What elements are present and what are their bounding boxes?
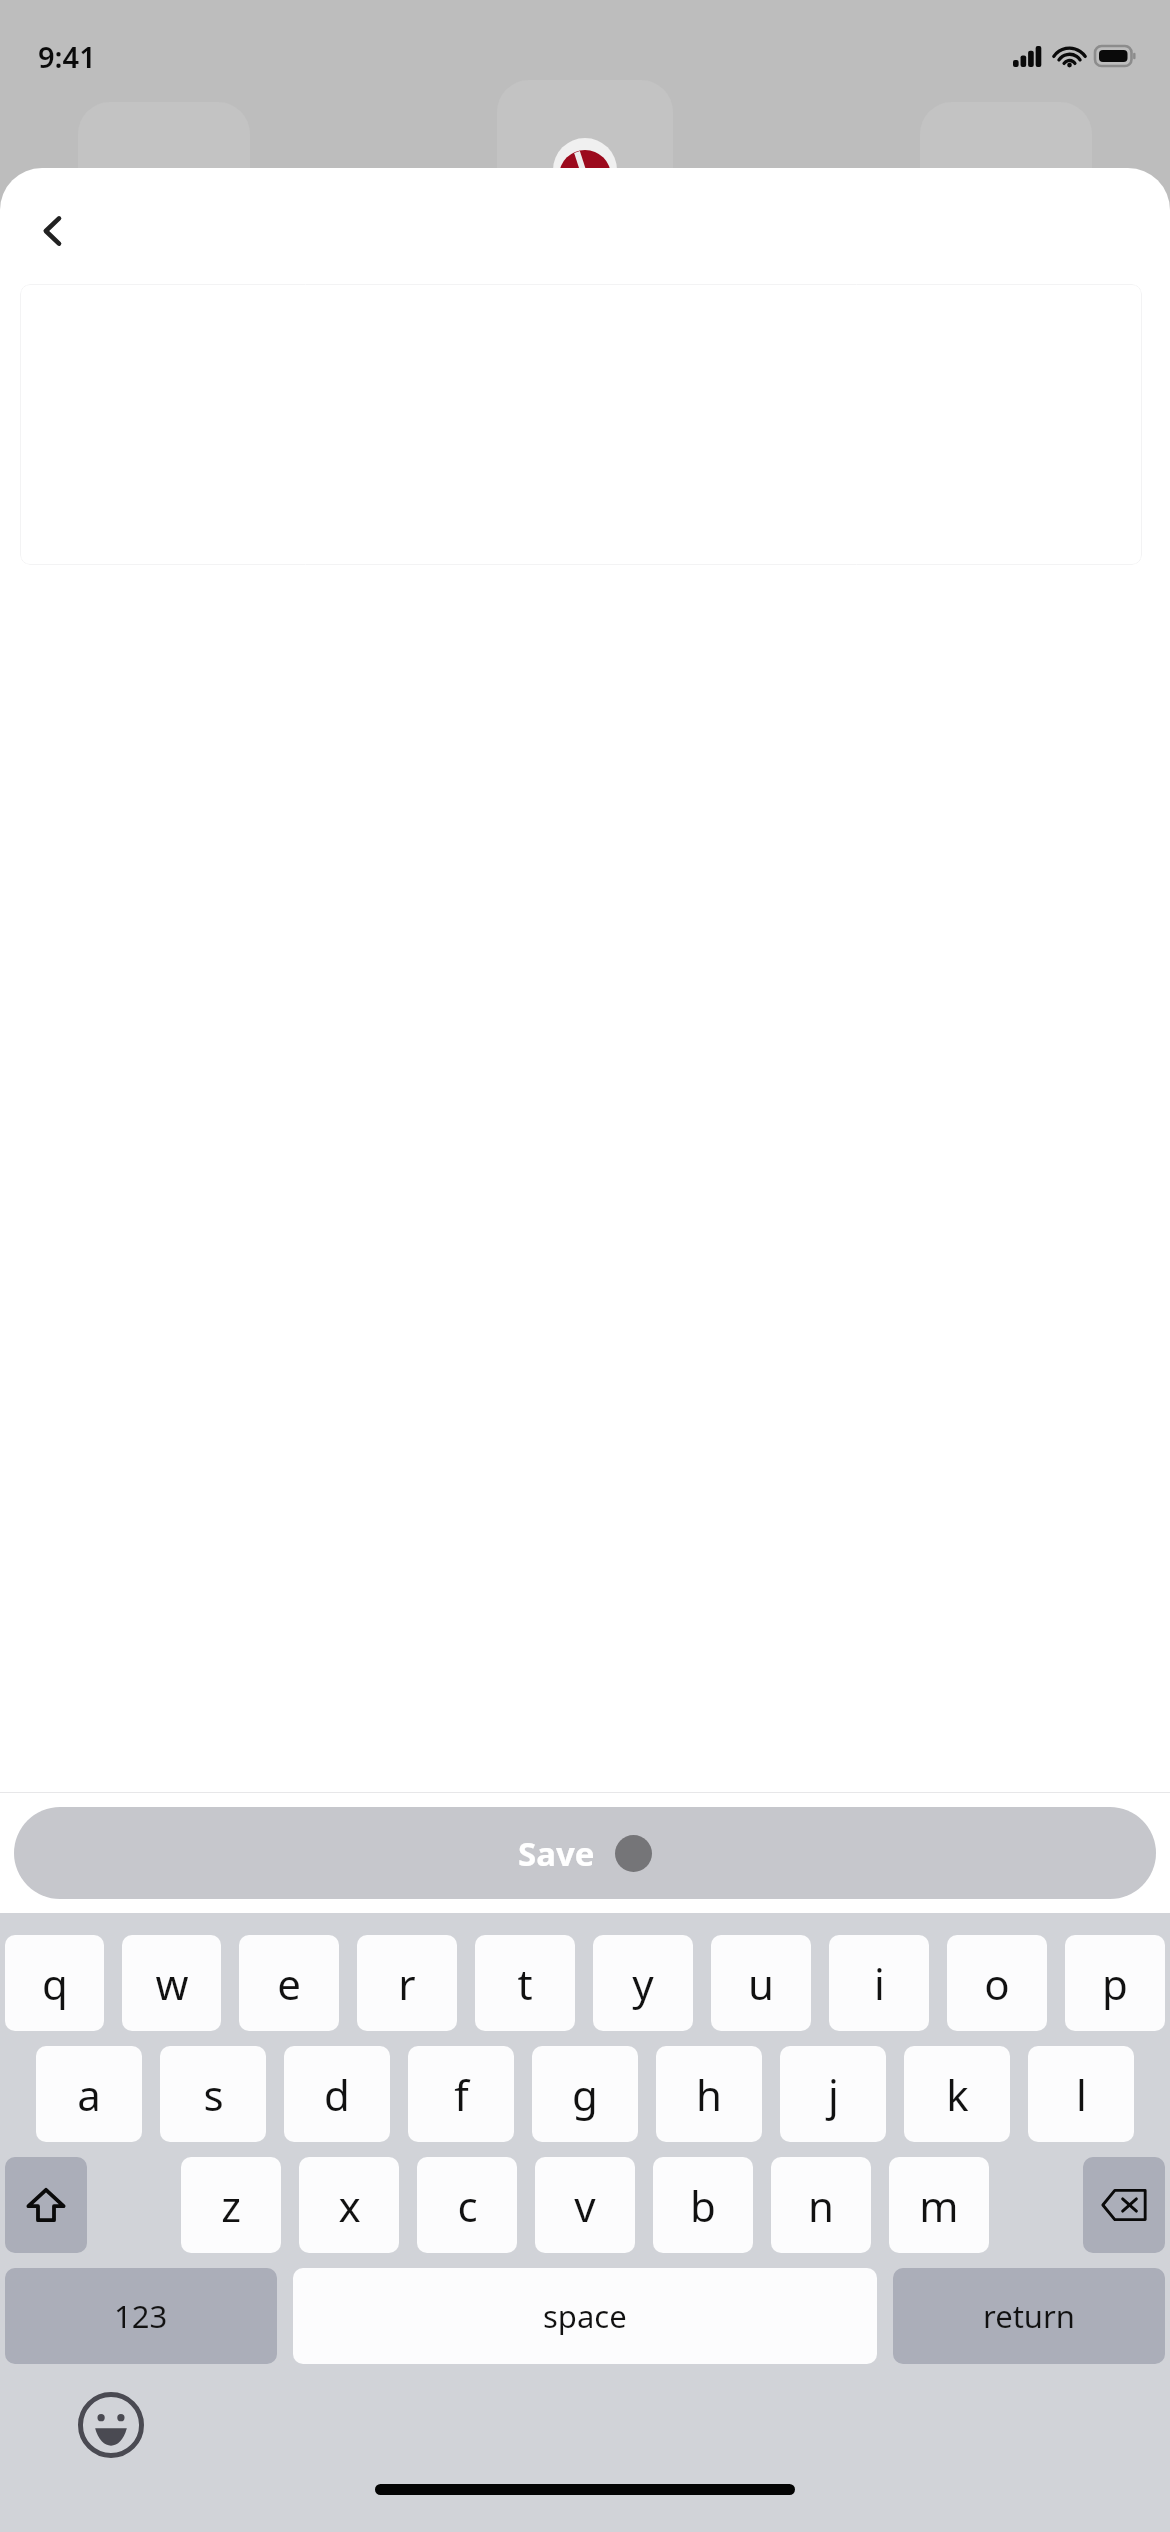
button[interactable]: z: [181, 2157, 281, 2253]
staticText: t: [517, 1955, 533, 2012]
button[interactable]: s: [160, 2046, 266, 2142]
staticText: Save: [518, 1831, 595, 1876]
staticText: 123: [114, 2295, 168, 2337]
button[interactable]: Shift: [5, 2157, 87, 2253]
staticText: c: [457, 2177, 478, 2234]
button[interactable]: o: [947, 1935, 1047, 2031]
staticText: k: [946, 2066, 969, 2123]
button[interactable]: u: [711, 1935, 811, 2031]
button[interactable]: t: [475, 1935, 575, 2031]
button[interactable]: k: [904, 2046, 1010, 2142]
staticText: v: [574, 2177, 596, 2234]
button[interactable]: m: [889, 2157, 989, 2253]
staticText: d: [324, 2066, 350, 2123]
button[interactable]: 123: [5, 2268, 277, 2364]
button[interactable]: n: [771, 2157, 871, 2253]
staticText: n: [808, 2177, 834, 2234]
staticText: f: [454, 2066, 469, 2123]
staticText: z: [221, 2177, 241, 2234]
button[interactable]: return: [893, 2268, 1165, 2364]
staticText: q: [42, 1955, 68, 2012]
staticText: h: [696, 2066, 722, 2123]
button[interactable]: e: [239, 1935, 339, 2031]
staticText: a: [77, 2066, 101, 2123]
staticText: g: [572, 2066, 598, 2123]
button[interactable]: Back: [22, 200, 84, 262]
button[interactable]: space: [293, 2268, 877, 2364]
button[interactable]: w: [122, 1935, 221, 2031]
staticText: space: [543, 2295, 627, 2337]
staticText: return: [983, 2295, 1075, 2337]
button[interactable]: h: [656, 2046, 762, 2142]
staticText: y: [632, 1955, 654, 2012]
button[interactable]: r: [357, 1935, 457, 2031]
staticText: e: [277, 1955, 301, 2012]
button[interactable]: y: [593, 1935, 693, 2031]
staticText: b: [690, 2177, 716, 2234]
button[interactable]: c: [417, 2157, 517, 2253]
button[interactable]: Save: [14, 1807, 1156, 1899]
button[interactable]: f: [408, 2046, 514, 2142]
button[interactable]: b: [653, 2157, 753, 2253]
button[interactable]: q: [5, 1935, 104, 2031]
button[interactable]: a: [36, 2046, 142, 2142]
staticText: x: [338, 2177, 361, 2234]
staticText: l: [1076, 2066, 1087, 2123]
staticText: w: [155, 1955, 189, 2012]
button[interactable]: l: [1028, 2046, 1134, 2142]
staticText: u: [748, 1955, 774, 2012]
button[interactable]: j: [780, 2046, 886, 2142]
button[interactable]: x: [299, 2157, 399, 2253]
staticText: j: [828, 2066, 839, 2123]
staticText: r: [398, 1955, 416, 2012]
button[interactable]: p: [1065, 1935, 1165, 2031]
button[interactable]: Backspace: [1083, 2157, 1165, 2253]
staticText: 9:41: [38, 37, 96, 76]
button[interactable]: v: [535, 2157, 635, 2253]
staticText: m: [919, 2177, 959, 2234]
staticText: s: [203, 2066, 224, 2123]
button[interactable]: g: [532, 2046, 638, 2142]
staticText: p: [1102, 1955, 1128, 2012]
button[interactable]: i: [829, 1935, 929, 2031]
button[interactable]: d: [284, 2046, 390, 2142]
button[interactable]: Emoji keyboard: [74, 2388, 148, 2462]
staticText: o: [984, 1955, 1010, 2012]
staticText: i: [874, 1955, 885, 2012]
